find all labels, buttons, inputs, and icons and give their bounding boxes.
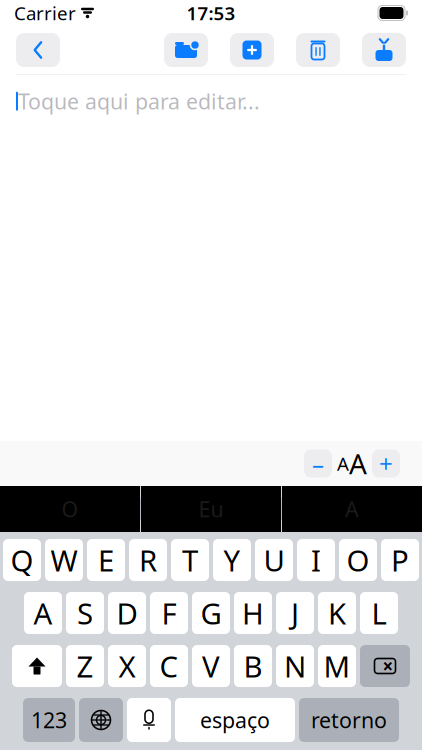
staticText: A xyxy=(337,451,349,476)
staticText: + xyxy=(379,448,393,479)
button[interactable]: Shift xyxy=(12,645,62,687)
staticText: N xyxy=(284,646,306,685)
staticText: O xyxy=(61,495,78,523)
button[interactable]: S xyxy=(66,592,104,634)
staticText: F xyxy=(161,593,176,632)
staticText: Q xyxy=(10,540,33,579)
button[interactable]: Delete xyxy=(360,645,410,687)
button[interactable]: espaço xyxy=(175,698,295,742)
staticText: A xyxy=(33,593,52,632)
staticText: G xyxy=(200,593,221,632)
button[interactable]: E xyxy=(87,539,125,581)
staticText: × xyxy=(382,654,393,678)
button[interactable]: Next keyboard xyxy=(79,698,123,742)
staticText: O xyxy=(346,540,369,579)
staticText: retorno xyxy=(311,706,387,734)
button[interactable]: P xyxy=(381,539,419,581)
button[interactable]: H xyxy=(234,592,272,634)
button[interactable]: 123 xyxy=(23,698,75,742)
button[interactable]: R xyxy=(129,539,167,581)
button[interactable]: F xyxy=(150,592,188,634)
button[interactable]: Y xyxy=(213,539,251,581)
button[interactable]: Z xyxy=(66,645,104,687)
staticText: C xyxy=(159,646,178,685)
staticText: Carrier xyxy=(14,1,76,25)
button[interactable]: Add xyxy=(230,33,274,67)
staticText: L xyxy=(371,593,386,632)
button[interactable]: L xyxy=(360,592,398,634)
button[interactable]: Back xyxy=(16,33,60,67)
staticText: Toque aqui para editar... xyxy=(18,87,260,115)
staticText: B xyxy=(243,646,262,685)
button[interactable]: U xyxy=(255,539,293,581)
button[interactable]: D xyxy=(108,592,146,634)
button[interactable]: W xyxy=(45,539,83,581)
button[interactable]: Share xyxy=(362,33,406,67)
staticText: D xyxy=(116,593,137,632)
button[interactable]: Q xyxy=(3,539,41,581)
button[interactable]: Folders xyxy=(164,33,208,67)
staticText: V xyxy=(202,646,220,685)
button[interactable]: retorno xyxy=(299,698,399,742)
button[interactable]: Increase text size xyxy=(372,449,400,477)
button[interactable]: V xyxy=(192,645,230,687)
button[interactable]: T xyxy=(171,539,209,581)
staticText: W xyxy=(50,540,77,579)
button[interactable]: C xyxy=(150,645,188,687)
button[interactable]: A xyxy=(24,592,62,634)
staticText: I xyxy=(311,540,321,579)
button[interactable]: G xyxy=(192,592,230,634)
button[interactable]: B xyxy=(234,645,272,687)
staticText: 123 xyxy=(31,706,67,734)
staticText: U xyxy=(263,540,284,579)
button[interactable]: M xyxy=(318,645,356,687)
staticText: X xyxy=(118,646,135,685)
staticText: K xyxy=(328,593,346,632)
staticText: A xyxy=(349,445,367,482)
staticText: A xyxy=(345,495,359,523)
staticText: espaço xyxy=(200,706,270,734)
staticText: E xyxy=(98,540,114,579)
button[interactable]: Eu xyxy=(141,486,281,532)
button[interactable]: K xyxy=(318,592,356,634)
button[interactable]: I xyxy=(297,539,335,581)
button[interactable]: O xyxy=(339,539,377,581)
button[interactable]: N xyxy=(276,645,314,687)
staticText: H xyxy=(242,593,264,632)
staticText: – xyxy=(312,448,324,479)
staticText: P xyxy=(391,540,409,579)
button[interactable]: Dictate xyxy=(127,698,171,742)
staticText: M xyxy=(323,646,350,685)
button[interactable]: X xyxy=(108,645,146,687)
staticText: Z xyxy=(76,646,93,685)
staticText: S xyxy=(77,593,93,632)
staticText: Y xyxy=(223,540,240,579)
staticText: T xyxy=(182,540,198,579)
staticText: R xyxy=(139,540,157,579)
button[interactable]: Decrease text size xyxy=(304,449,332,477)
staticText: J xyxy=(291,593,299,632)
staticText: Eu xyxy=(198,495,223,523)
button[interactable]: Delete xyxy=(296,33,340,67)
staticText: 17:53 xyxy=(186,1,235,25)
button[interactable]: J xyxy=(276,592,314,634)
